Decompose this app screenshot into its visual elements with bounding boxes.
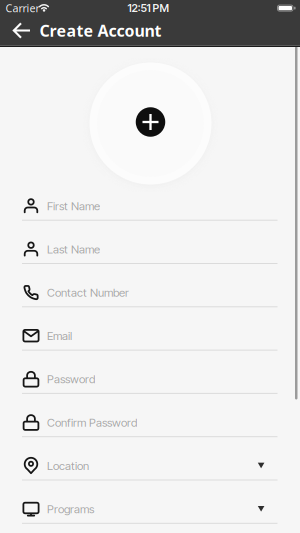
- button[interactable]: Password: [0, 358, 300, 401]
- staticText: Confirm Password: [47, 416, 137, 429]
- button[interactable]: Confirm Password: [0, 401, 300, 444]
- button[interactable]: Location: [0, 444, 300, 487]
- staticText: Location: [47, 459, 89, 473]
- staticText: Password: [47, 372, 95, 386]
- staticText: Contact Number: [47, 286, 129, 300]
- staticText: First Name: [47, 199, 100, 213]
- staticText: Create Account: [39, 20, 161, 41]
- button[interactable]: Contact Number: [0, 271, 300, 314]
- button[interactable]: Last Name: [0, 228, 300, 271]
- button[interactable]: Back: [9, 17, 35, 43]
- button[interactable]: Email: [0, 314, 300, 357]
- staticText: Carrier: [5, 1, 39, 15]
- button[interactable]: Programs: [0, 488, 300, 531]
- staticText: Programs: [47, 502, 94, 516]
- staticText: Last Name: [47, 242, 100, 256]
- staticText: 12:51 PM: [127, 1, 169, 15]
- button[interactable]: Add profile photo: [89, 62, 211, 184]
- button[interactable]: First Name: [0, 184, 300, 227]
- staticText: Email: [47, 329, 72, 343]
